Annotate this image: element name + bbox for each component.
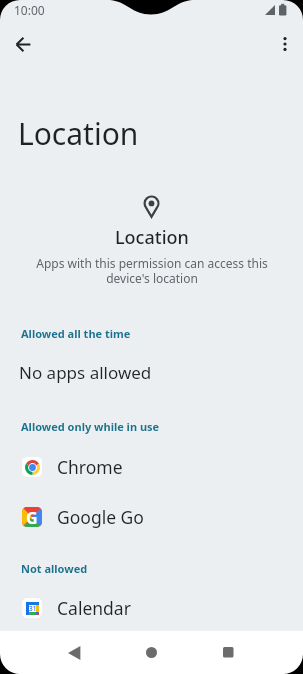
staticText: Location [115, 225, 189, 250]
button[interactable] [131, 637, 171, 668]
staticText: 10:00 [14, 2, 45, 18]
staticText: G [26, 507, 38, 527]
staticText: Chrome [57, 455, 123, 479]
staticText: Allowed only while in use [21, 419, 160, 434]
button[interactable] [270, 29, 300, 59]
staticText: Google Go [57, 505, 144, 529]
staticText: Calendar [57, 596, 131, 620]
staticText: 31 [29, 604, 37, 613]
button[interactable] [8, 29, 38, 59]
button[interactable] [0, 442, 303, 492]
button[interactable]: No apps allowed [0, 350, 303, 394]
staticText: Location [18, 113, 139, 154]
staticText: Allowed all the time [21, 326, 131, 341]
staticText: No apps allowed [19, 361, 152, 384]
staticText: Not allowed [21, 561, 88, 576]
staticText: Apps with this permission can access thi… [36, 255, 268, 287]
button[interactable] [208, 637, 248, 668]
button[interactable]: G [0, 492, 303, 542]
button[interactable]: 31 [0, 583, 303, 633]
button[interactable] [54, 637, 94, 668]
